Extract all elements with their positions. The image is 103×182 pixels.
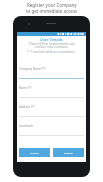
staticText: Register your Company [27,2,77,8]
staticText: Company Name (*) [19,67,46,71]
staticText: User Details [40,37,63,41]
staticText: ( * ) marked fields are mandatory [27,50,76,53]
staticText: Name (*) [19,86,32,90]
staticText: Address (*) [19,105,35,109]
staticText: Landmark [19,124,33,128]
staticText: register your company [35,45,68,48]
button[interactable]: SUBMIT [53,148,84,157]
staticText: Please fill the below details and [29,42,75,45]
staticText: SUBMIT [64,151,73,154]
staticText: to get immediate access [26,8,78,14]
button[interactable]: CANCEL [19,148,50,157]
staticText: CANCEL [30,151,39,154]
